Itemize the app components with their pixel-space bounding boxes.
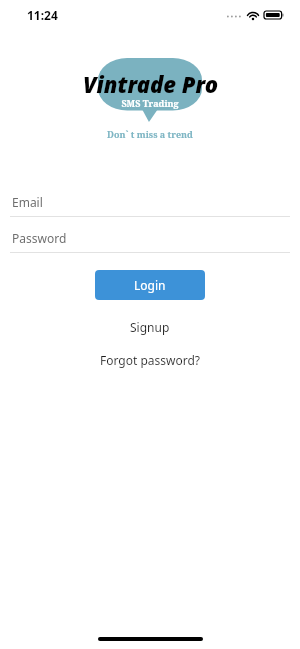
button[interactable]: Email [0, 188, 300, 224]
staticText: Forgot password? [100, 352, 201, 368]
staticText: Email [12, 194, 43, 210]
staticText: Login [134, 277, 166, 293]
staticText: Vintrade Pro [83, 69, 218, 99]
staticText: SMS Trading [121, 97, 179, 109]
staticText: 11:24 [27, 7, 58, 23]
staticText: Don` t miss a trend [107, 128, 193, 140]
button[interactable]: Forgot password? [100, 352, 201, 368]
button[interactable]: Login [95, 270, 205, 300]
button[interactable]: Signup [130, 319, 170, 335]
staticText: Password [12, 230, 67, 246]
button[interactable]: Password [0, 224, 300, 260]
staticText: Signup [130, 319, 170, 335]
